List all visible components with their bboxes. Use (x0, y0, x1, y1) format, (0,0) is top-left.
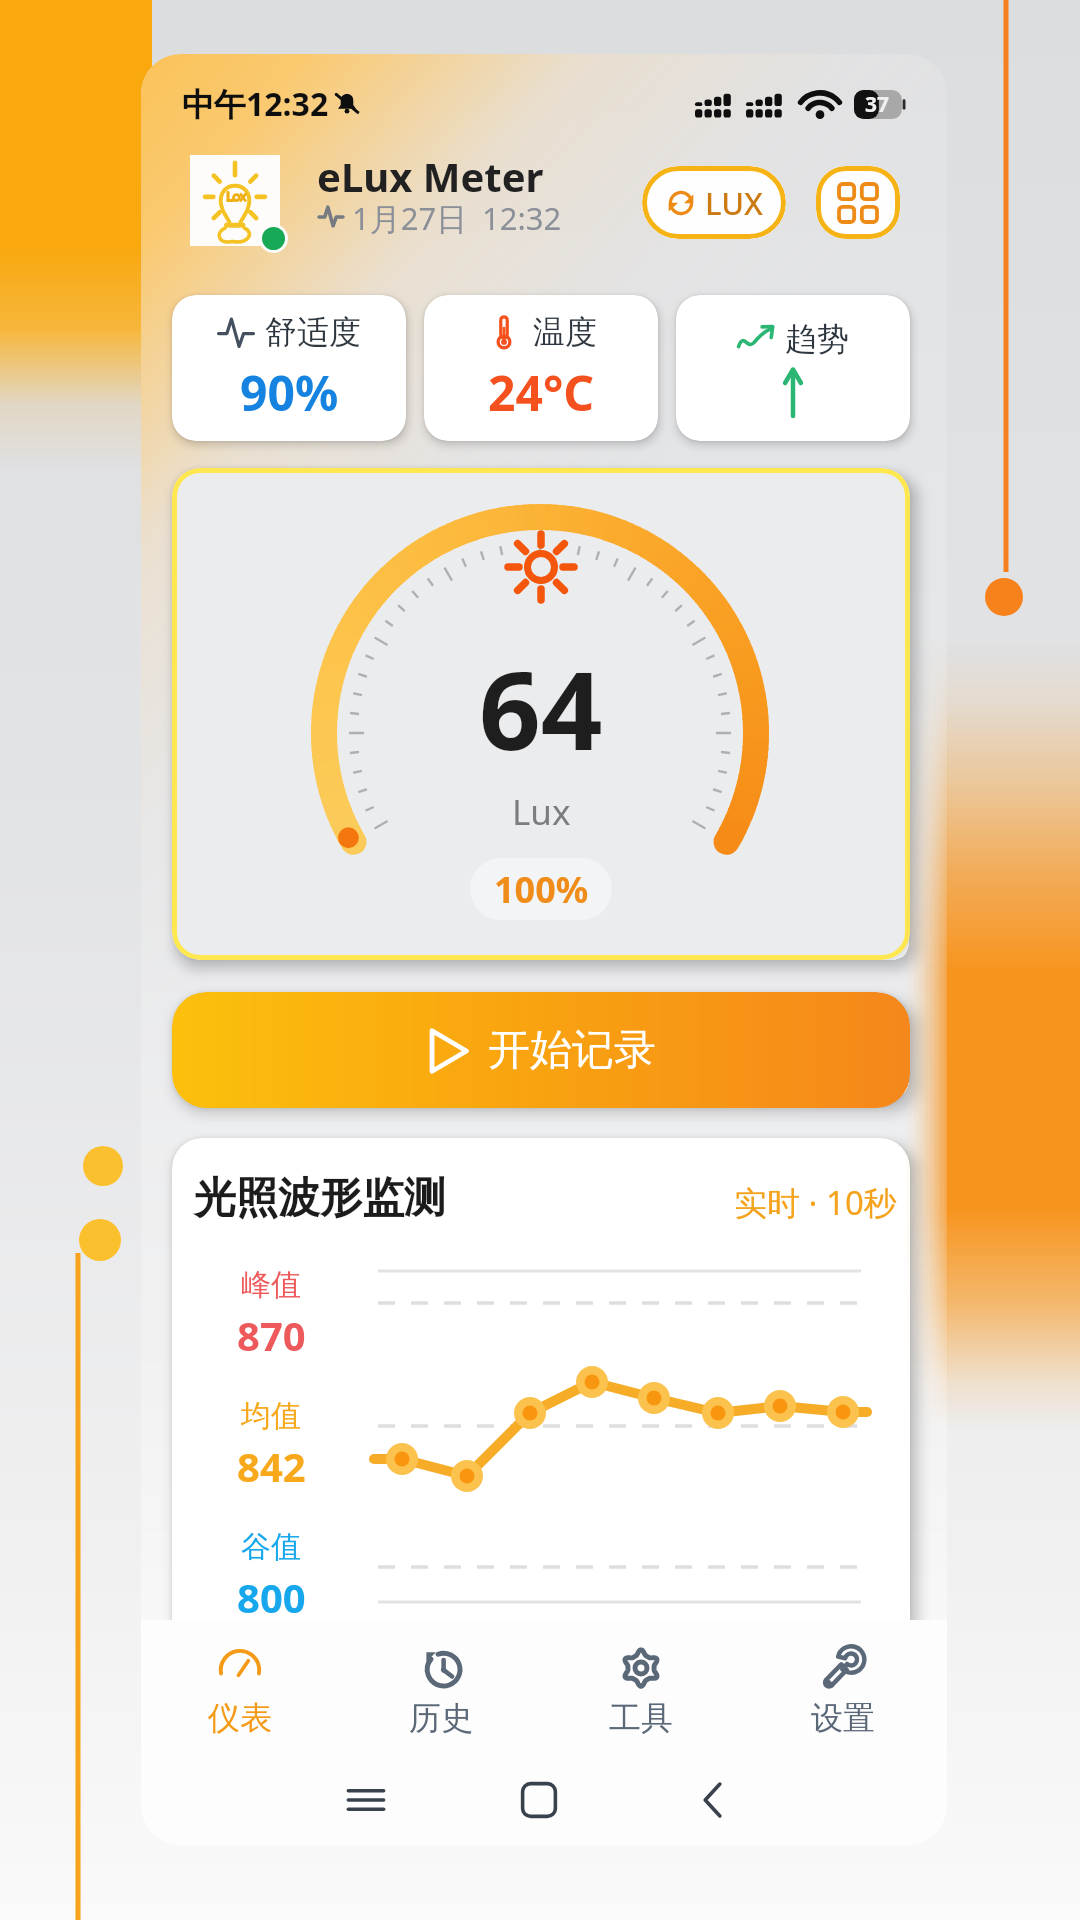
staticText: 仪表 (208, 1698, 272, 1738)
button[interactable]: 工具 (561, 1632, 721, 1744)
staticText: 实时 · 10秒 (734, 1180, 897, 1225)
staticText: eLux Meter (317, 149, 544, 203)
button[interactable]: 64 (172, 468, 910, 960)
staticText: 64 (479, 635, 603, 765)
staticText: 历史 (409, 1698, 473, 1738)
staticText: 峰值 (241, 1266, 301, 1304)
staticText: 中午12:32 (182, 82, 329, 126)
button[interactable]: Home (494, 1755, 584, 1845)
staticText: 趋势 (785, 319, 849, 359)
staticText: 温度 (533, 312, 597, 352)
staticText: Lux (512, 788, 571, 836)
staticText: 90% (240, 360, 339, 425)
button[interactable]: 历史 (361, 1632, 521, 1744)
button[interactable]: 设置 (763, 1632, 923, 1744)
staticText: LUX (705, 182, 764, 224)
staticText: 12:32 (482, 197, 562, 235)
button[interactable]: 温度 (424, 295, 658, 441)
staticText: 舒适度 (265, 312, 361, 352)
button[interactable]: 开始记录 (172, 992, 910, 1108)
button[interactable]: Recents (321, 1755, 411, 1845)
staticText: 800 (237, 1570, 306, 1624)
staticText: 1月27日 (352, 197, 468, 235)
staticText: 24°C (488, 360, 595, 425)
staticText: 开始记录 (488, 1024, 656, 1077)
button[interactable]: 趋势 (676, 295, 910, 441)
staticText: 设置 (811, 1698, 875, 1738)
staticText: 870 (237, 1308, 306, 1362)
staticText: 光照波形监测 (194, 1172, 446, 1225)
button[interactable]: LUX (642, 166, 786, 239)
staticText: 均值 (241, 1397, 301, 1435)
staticText: 谷值 (241, 1528, 301, 1566)
button[interactable]: 舒适度 (172, 295, 406, 441)
button[interactable]: Grid view (816, 166, 900, 239)
button[interactable]: Back (669, 1755, 759, 1845)
staticText: 842 (237, 1439, 306, 1493)
staticText: 工具 (609, 1698, 673, 1738)
staticText: 37 (865, 90, 890, 119)
staticText: 100% (494, 865, 589, 914)
button[interactable]: 仪表 (160, 1632, 320, 1744)
